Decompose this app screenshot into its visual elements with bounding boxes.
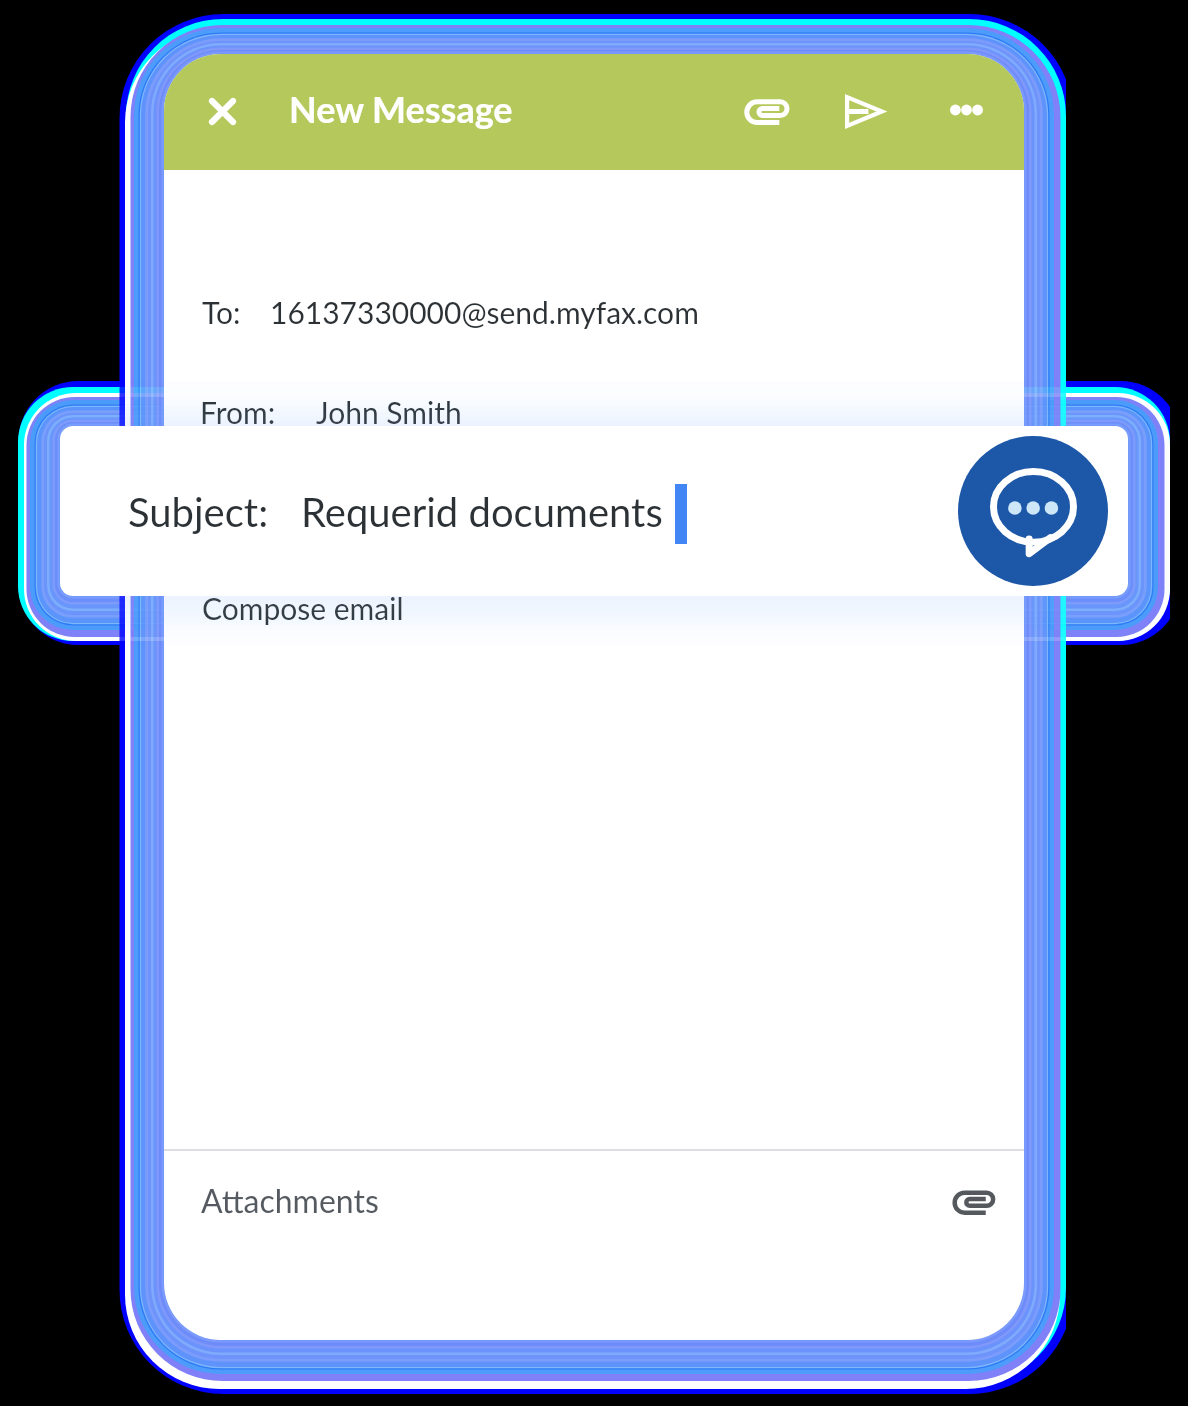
button[interactable]: More options — [932, 75, 1001, 144]
staticText: John Smith — [316, 394, 462, 430]
staticText: From: — [200, 394, 276, 430]
button[interactable] — [164, 1151, 1024, 1251]
staticText: Requerid documents — [316, 494, 588, 530]
button[interactable]: Attach file — [732, 77, 801, 146]
staticText: 16137330000@send.myfax.com — [270, 294, 699, 330]
staticText: New Message — [289, 87, 513, 130]
button[interactable]: Close — [188, 77, 257, 146]
staticText: Attachments — [201, 1181, 379, 1219]
button[interactable] — [164, 262, 1024, 340]
staticText: Subject: — [200, 494, 306, 530]
staticText: Subject: — [128, 488, 269, 536]
staticText: Requerid documents — [301, 488, 663, 536]
staticText: Compose email — [202, 590, 404, 626]
button[interactable] — [164, 462, 1024, 540]
button[interactable]: Chat — [958, 436, 1108, 586]
button[interactable]: Send — [830, 77, 899, 146]
button[interactable] — [164, 558, 1024, 636]
staticText: To: — [202, 294, 241, 330]
button[interactable] — [164, 362, 1024, 440]
button[interactable]: Add attachment — [939, 1168, 1008, 1237]
